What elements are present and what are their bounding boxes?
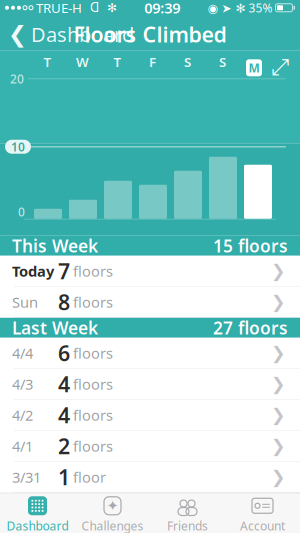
staticText: F — [149, 53, 156, 71]
staticText: 0 — [18, 204, 25, 220]
button[interactable]: Expand chart — [266, 55, 294, 81]
button[interactable]: 4/4 — [0, 338, 300, 369]
staticText: 10 — [11, 139, 25, 155]
staticText: floors — [73, 292, 113, 312]
staticText: ᗡ ✻ — [82, 1, 117, 14]
staticText: S — [219, 53, 226, 71]
staticText: TRUE-H — [33, 0, 82, 17]
staticText: ⤢ — [271, 57, 289, 79]
staticText: 4/2 — [12, 405, 33, 425]
staticText: Today — [12, 261, 54, 281]
button[interactable]: 4/2 — [0, 400, 300, 431]
staticText: ❯ — [271, 292, 286, 312]
staticText: 4/3 — [12, 374, 33, 394]
staticText: 6 — [58, 339, 70, 367]
button[interactable]: 4/3 — [0, 369, 300, 400]
button[interactable]: ✦ — [75, 492, 150, 533]
staticText: ❯ — [271, 436, 286, 456]
staticText: ◉ ➤ ✻ 35% — [207, 0, 272, 16]
staticText: 8 — [58, 288, 70, 316]
staticText: ✦ — [106, 497, 118, 514]
staticText: ❮ — [8, 21, 27, 47]
staticText: T — [43, 53, 51, 71]
staticText: floors — [73, 261, 113, 281]
staticText: floors — [73, 343, 113, 363]
staticText: Friends — [167, 518, 208, 533]
staticText: 3/31 — [12, 467, 41, 487]
staticText: 7 — [58, 257, 70, 285]
staticText: This Week — [12, 234, 98, 257]
staticText: 09:39 — [144, 0, 180, 17]
staticText: W — [76, 53, 89, 71]
staticText: 2 — [58, 432, 70, 460]
staticText: Last Week — [12, 316, 98, 339]
staticText: 4/4 — [12, 343, 33, 363]
button[interactable]: Account — [225, 492, 300, 533]
staticText: 4/1 — [12, 436, 33, 456]
button[interactable]: 4/1 — [0, 431, 300, 462]
staticText: Account — [240, 518, 285, 533]
button[interactable]: Friends — [150, 492, 225, 533]
staticText: Dashboard — [6, 518, 68, 533]
staticText: M — [248, 60, 259, 76]
staticText: floor — [73, 467, 106, 487]
staticText: Sun — [12, 292, 38, 312]
staticText: Dashboard — [31, 21, 134, 48]
staticText: 1 — [58, 463, 70, 491]
staticText: 27 floors — [213, 316, 288, 339]
button[interactable]: Month view — [242, 55, 266, 80]
button[interactable]: Dashboard — [0, 492, 75, 533]
button[interactable]: 3/31 — [0, 462, 300, 493]
staticText: floors — [73, 374, 113, 394]
staticText: ❯ — [271, 467, 286, 487]
staticText: ❯ — [271, 261, 286, 281]
staticText: Challenges — [81, 518, 143, 533]
staticText: Floors Climbed — [73, 20, 226, 48]
button[interactable]: Today — [0, 256, 300, 287]
button[interactable]: Sun — [0, 287, 300, 318]
staticText: ❯ — [271, 343, 286, 363]
staticText: S — [184, 53, 191, 71]
staticText: T — [113, 53, 121, 71]
staticText: floors — [73, 436, 113, 456]
staticText: ❯ — [271, 405, 286, 425]
button[interactable]: ❮ — [0, 15, 134, 54]
staticText: ❯ — [271, 374, 286, 394]
staticText: 15 floors — [213, 234, 288, 257]
staticText: floors — [73, 405, 113, 425]
staticText: 20 — [10, 71, 24, 87]
staticText: 4 — [58, 370, 70, 398]
staticText: 4 — [58, 401, 70, 429]
